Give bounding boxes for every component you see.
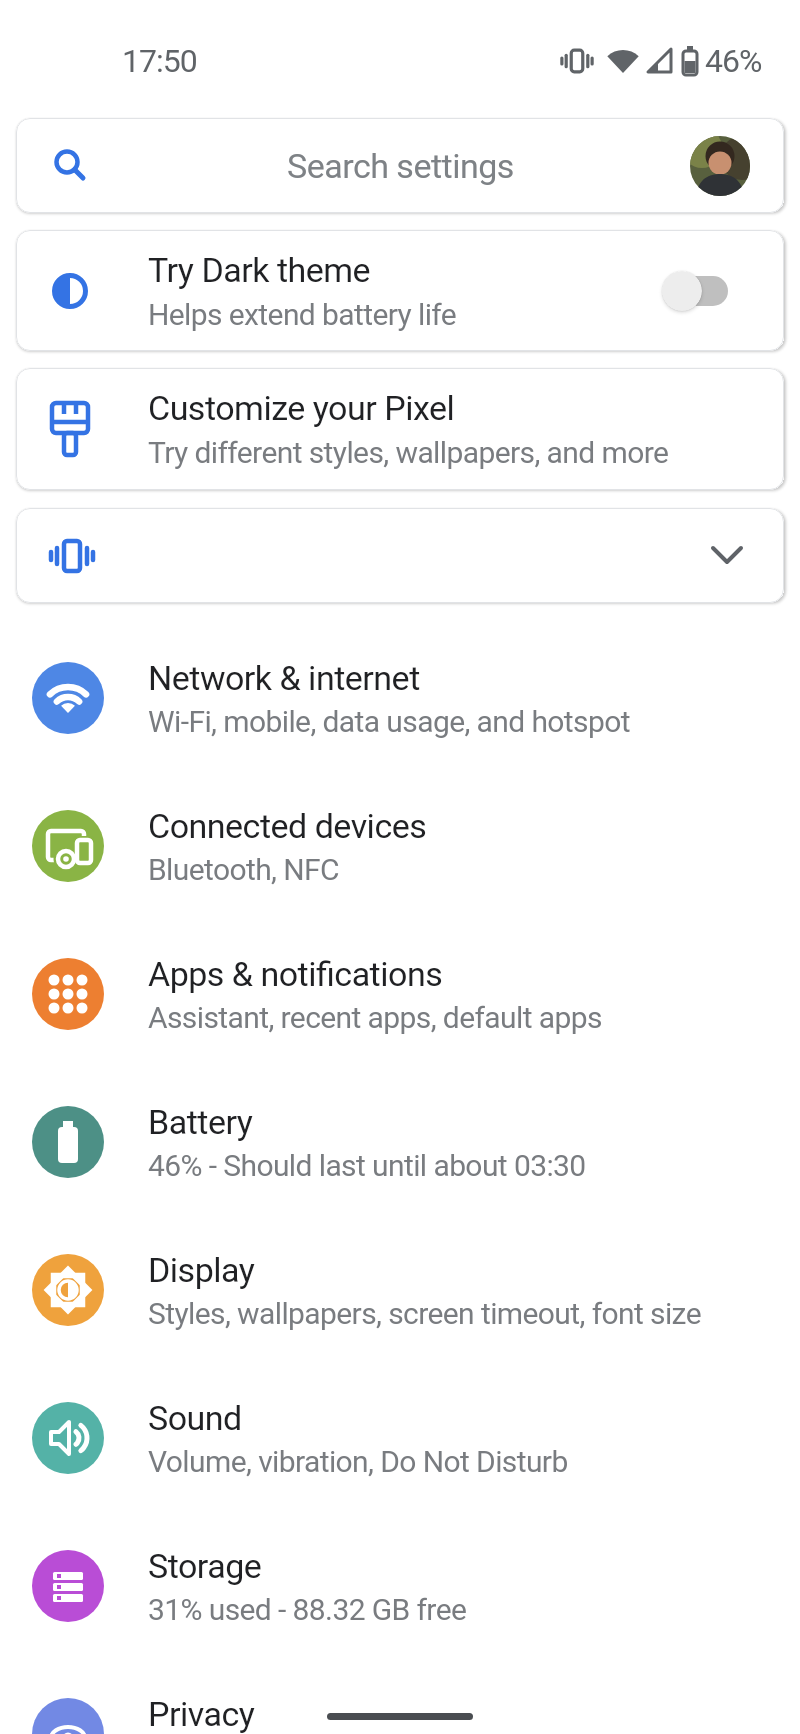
staticText: Volume, vibration, Do Not Disturb bbox=[148, 1444, 568, 1479]
staticText: Apps & notifications bbox=[148, 954, 443, 994]
button[interactable]: Connected devices bbox=[0, 772, 800, 920]
staticText: Network & internet bbox=[148, 658, 420, 698]
button[interactable] bbox=[662, 271, 728, 311]
staticText: Styles, wallpapers, screen timeout, font… bbox=[148, 1296, 701, 1331]
button[interactable] bbox=[16, 508, 784, 603]
button[interactable]: Try Dark theme bbox=[16, 230, 784, 351]
button[interactable]: Battery bbox=[0, 1068, 800, 1216]
staticText: Wi-Fi, mobile, data usage, and hotspot bbox=[148, 704, 630, 739]
staticText: Privacy bbox=[148, 1694, 255, 1734]
button[interactable]: Search settings bbox=[16, 118, 784, 213]
staticText: Connected devices bbox=[148, 806, 427, 846]
staticText: Assistant, recent apps, default apps bbox=[148, 1000, 602, 1035]
staticText: Display bbox=[148, 1250, 255, 1290]
staticText: 17:50 bbox=[122, 42, 197, 80]
staticText: 46% - Should last until about 03:30 bbox=[148, 1148, 586, 1183]
staticText: Storage bbox=[148, 1546, 262, 1586]
button[interactable]: Storage bbox=[0, 1512, 800, 1660]
button[interactable]: Sound bbox=[0, 1364, 800, 1512]
staticText: Bluetooth, NFC bbox=[148, 852, 339, 887]
button[interactable]: Privacy bbox=[0, 1660, 800, 1734]
staticText: Customize your Pixel bbox=[148, 388, 455, 428]
button[interactable]: Customize your Pixel bbox=[16, 368, 784, 490]
button[interactable]: Network & internet bbox=[0, 624, 800, 772]
button[interactable] bbox=[690, 136, 750, 196]
staticText: 31% used - 88.32 GB free bbox=[148, 1592, 467, 1627]
staticText: Helps extend battery life bbox=[148, 297, 457, 332]
staticText: Battery bbox=[148, 1102, 253, 1142]
staticText: Try Dark theme bbox=[148, 250, 371, 290]
button[interactable]: Display bbox=[0, 1216, 800, 1364]
staticText: Search settings bbox=[287, 146, 514, 186]
staticText: 46% bbox=[705, 42, 762, 80]
button[interactable]: Apps & notifications bbox=[0, 920, 800, 1068]
staticText: Try different styles, wallpapers, and mo… bbox=[148, 435, 669, 470]
staticText: Sound bbox=[148, 1398, 242, 1438]
